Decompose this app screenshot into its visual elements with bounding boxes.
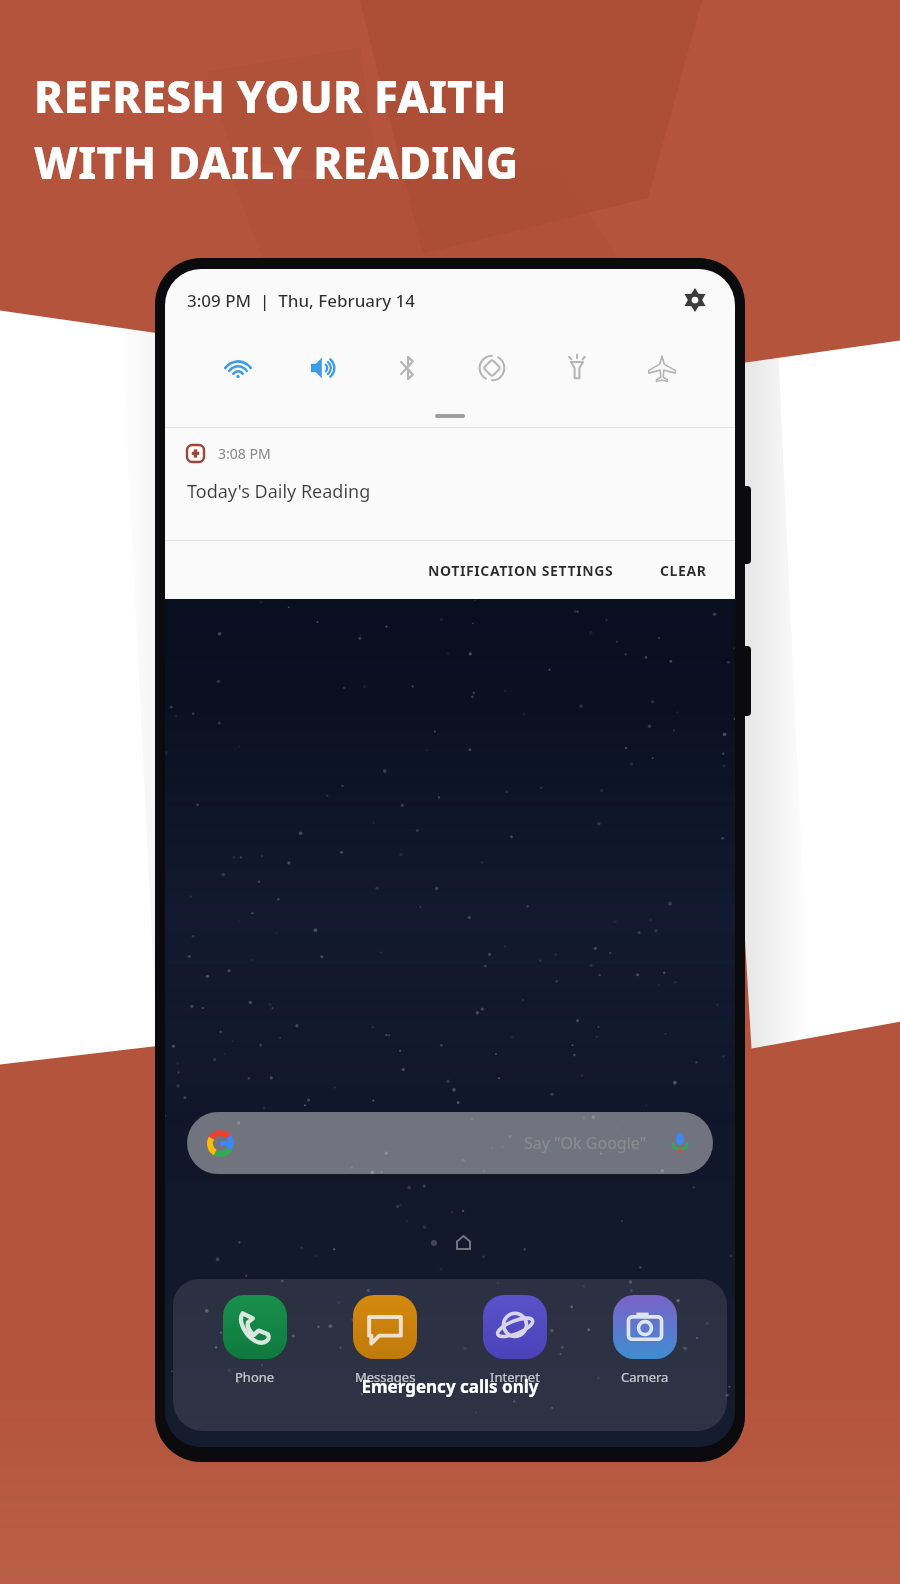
staticText: REFRESH YOUR FAITH bbox=[34, 66, 507, 126]
staticText: Camera bbox=[621, 1368, 669, 1386]
button[interactable]: Bluetooth bbox=[382, 342, 434, 394]
staticText: 3:08 PM bbox=[218, 444, 271, 463]
button[interactable]: Say "Ok Google" bbox=[187, 1112, 713, 1174]
staticText: Today's Daily Reading bbox=[187, 479, 371, 504]
staticText: NOTIFICATION SETTINGS bbox=[428, 561, 614, 580]
button[interactable]: Flashlight bbox=[551, 342, 603, 394]
button[interactable]: Phone bbox=[207, 1279, 303, 1386]
staticText: Phone bbox=[235, 1368, 275, 1386]
button[interactable]: Camera bbox=[597, 1279, 693, 1386]
button[interactable]: Settings bbox=[677, 282, 713, 318]
staticText: Emergency calls only bbox=[361, 1375, 539, 1398]
staticText: Internet bbox=[490, 1368, 540, 1386]
button[interactable]: Internet bbox=[467, 1279, 563, 1386]
button[interactable]: Sound bbox=[297, 342, 349, 394]
button[interactable]: Wi-Fi bbox=[212, 342, 264, 394]
button[interactable]: Voice search bbox=[667, 1130, 693, 1156]
button[interactable]: Messages bbox=[337, 1279, 433, 1386]
button[interactable]: Auto rotate bbox=[466, 342, 518, 394]
button[interactable]: CLEAR bbox=[646, 551, 721, 590]
staticText: CLEAR bbox=[660, 561, 707, 580]
staticText: Messages bbox=[355, 1368, 416, 1386]
staticText: WITH DAILY READING bbox=[34, 132, 519, 192]
staticText: 3:09 PM | Thu, February 14 bbox=[187, 289, 416, 312]
button[interactable]: Airplane mode bbox=[636, 342, 688, 394]
staticText: Say "Ok Google" bbox=[524, 1132, 647, 1154]
button[interactable]: NOTIFICATION SETTINGS bbox=[414, 551, 628, 590]
